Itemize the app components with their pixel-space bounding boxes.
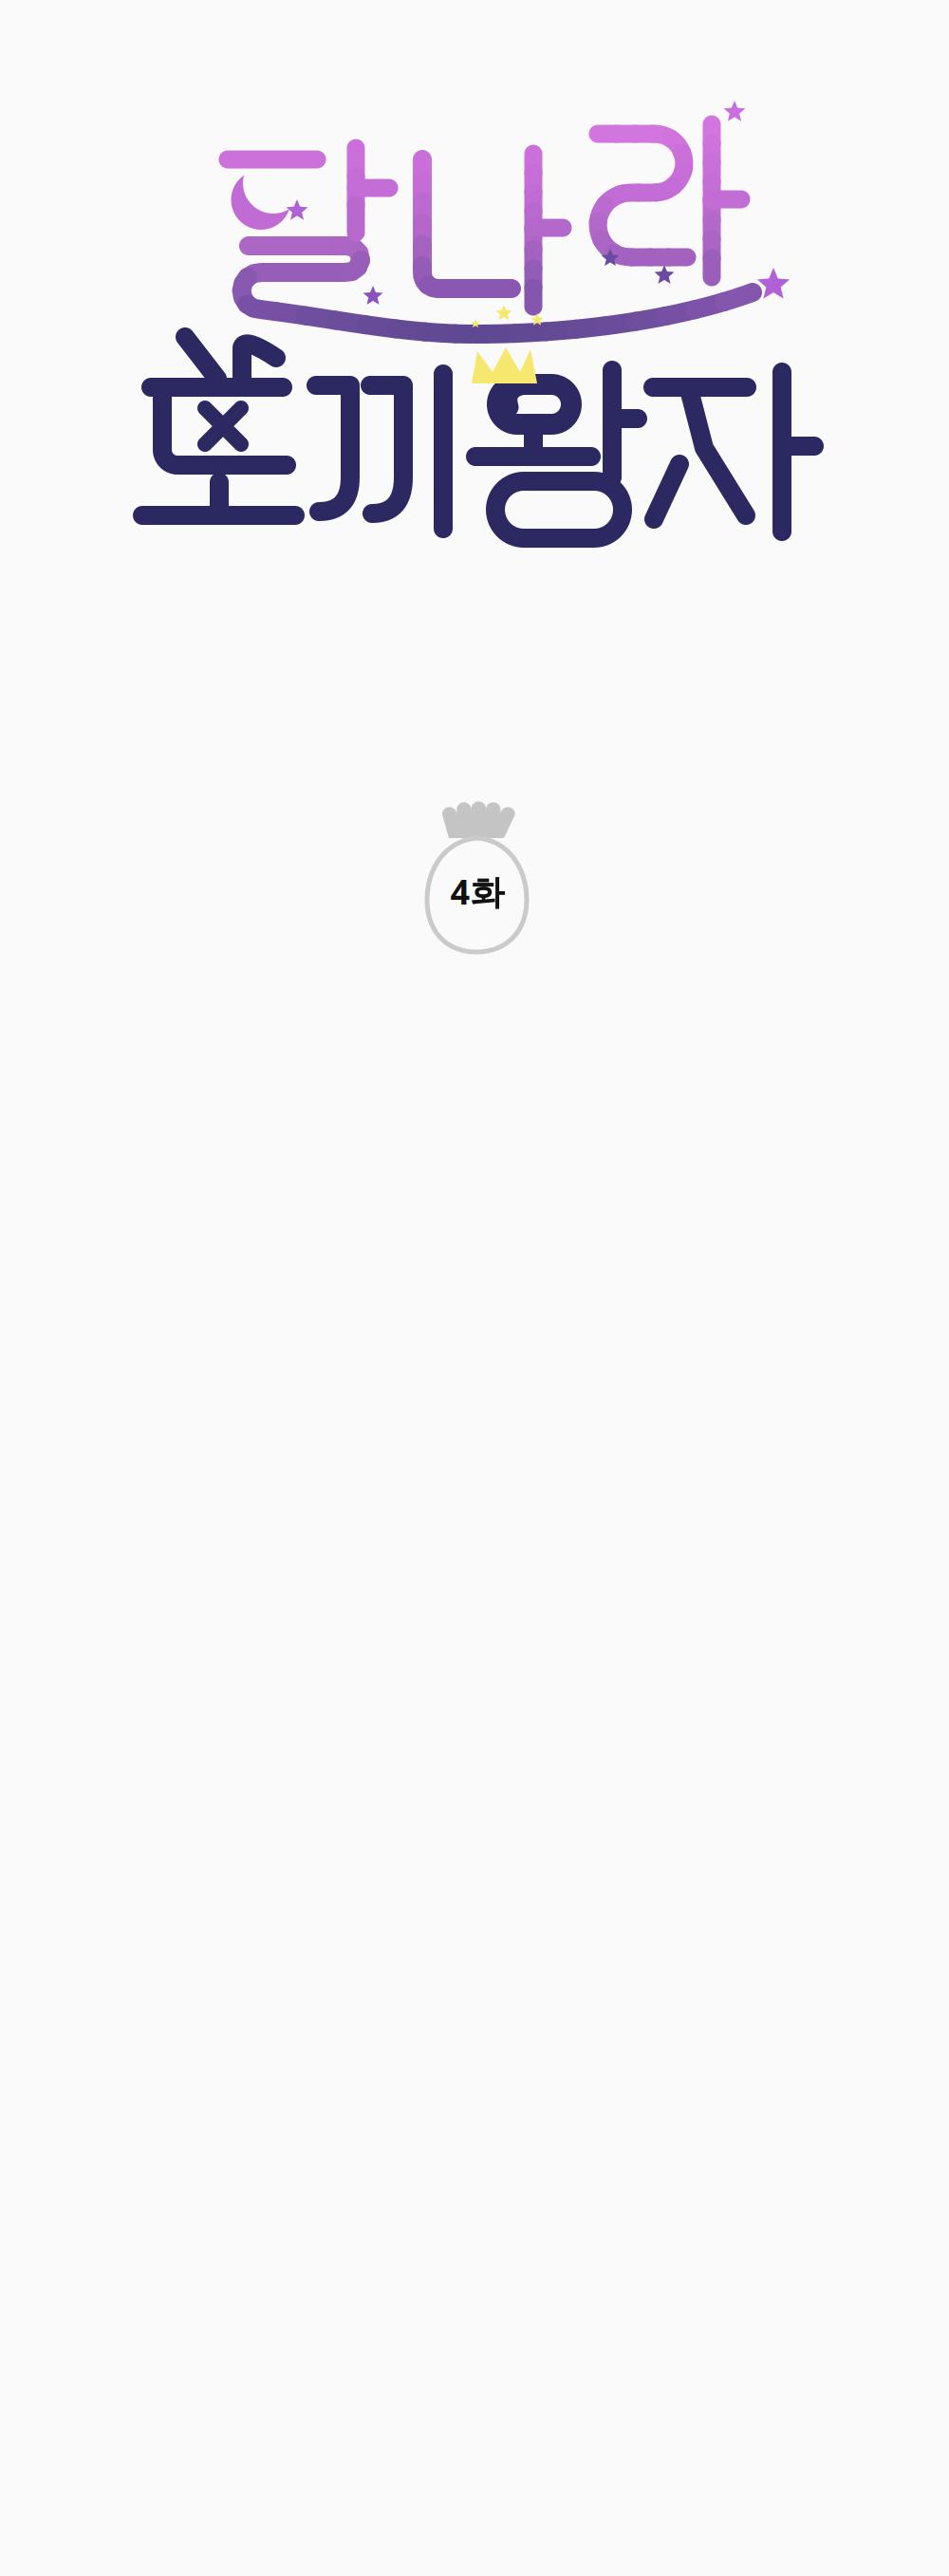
button[interactable]: 4화 [0, 0, 949, 190]
staticText: 4화 [450, 868, 504, 915]
